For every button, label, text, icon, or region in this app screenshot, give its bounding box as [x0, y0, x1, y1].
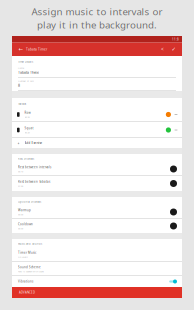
staticText: Optional Intervals	[18, 200, 41, 203]
staticText: Tabata Three	[18, 70, 39, 75]
staticText: 00:10	[18, 170, 23, 173]
button[interactable]: Back	[15, 42, 26, 56]
staticText: Sound Scheme	[18, 265, 41, 269]
button[interactable]: Number of sets	[12, 78, 182, 91]
staticText: Timer Details	[18, 60, 33, 63]
button[interactable]: Name	[12, 65, 182, 78]
staticText: Assign music to intervals or	[31, 5, 162, 18]
staticText: Number of sets	[18, 79, 34, 82]
staticText: Cooldown	[18, 222, 33, 226]
staticText: Row	[25, 111, 31, 114]
staticText: 00:00	[18, 227, 23, 230]
button[interactable]: Cooldown	[12, 219, 182, 233]
button[interactable]: Save	[168, 42, 179, 56]
staticText: Text is spoken with count	[18, 270, 44, 273]
button[interactable]: Vibrations	[12, 276, 182, 287]
button[interactable]: Rest between intervals	[12, 162, 182, 176]
staticText: Add Exercise	[24, 141, 42, 145]
button[interactable]: Timer Music	[12, 247, 182, 262]
button[interactable]: ADVANCED	[12, 287, 182, 298]
button[interactable]: Rest between Tabatas	[12, 176, 182, 191]
button[interactable]: Sound Scheme	[12, 262, 182, 276]
staticText: No Music	[18, 255, 28, 258]
staticText: 00:20	[25, 115, 30, 118]
staticText: Timer Music	[18, 251, 36, 254]
staticText: Squat	[25, 126, 34, 130]
staticText: 8	[18, 83, 20, 88]
staticText: Rest between intervals	[18, 165, 51, 169]
button[interactable]: +	[12, 138, 182, 148]
button[interactable]: Squat	[12, 122, 182, 138]
staticText: Music and Sounds	[18, 242, 42, 245]
staticText: Vibrations	[18, 280, 33, 283]
button[interactable]: Share	[157, 42, 168, 56]
staticText: Warmup	[18, 208, 31, 212]
staticText: play it in the background.	[37, 18, 157, 31]
staticText: 01:00	[18, 184, 23, 187]
button[interactable]: Warmup	[12, 205, 182, 219]
staticText: Rest Intervals	[18, 157, 34, 160]
button[interactable]: Row	[12, 107, 182, 122]
staticText: +	[17, 141, 19, 145]
staticText: 11:8	[172, 37, 179, 41]
staticText: Name	[18, 66, 24, 69]
staticText: ←	[18, 46, 22, 52]
staticText: Rest between Tabatas	[18, 180, 50, 183]
staticText: ✓	[171, 46, 175, 52]
staticText: ADVANCED	[19, 291, 35, 294]
staticText: Tabata Timer	[26, 47, 47, 51]
staticText: 00:20	[25, 131, 30, 134]
staticText: <	[161, 46, 164, 52]
staticText: 00:00	[18, 213, 23, 216]
staticText: Tabatas	[18, 102, 26, 105]
